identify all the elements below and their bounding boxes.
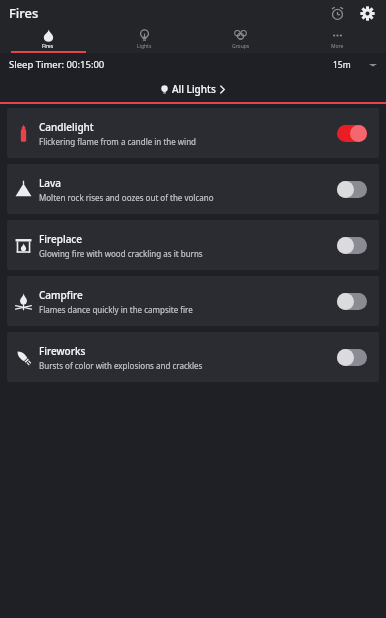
staticText: Molten rock rises and oozes out of the v… [39, 192, 214, 203]
button[interactable]: Fires [0, 26, 96, 53]
staticText: Groups [232, 43, 250, 50]
button[interactable]: Groups [192, 26, 289, 53]
staticText: Campfire [39, 288, 83, 302]
button[interactable]: All Lights [0, 76, 386, 102]
button[interactable]: Settings [354, 0, 380, 26]
button[interactable]: Toggle Fireworks [325, 332, 379, 382]
staticText: Lava [39, 176, 62, 190]
button[interactable]: Toggle Campfire [325, 276, 379, 326]
button[interactable]: Sleep timer [324, 0, 350, 26]
staticText: All Lights [172, 82, 216, 96]
button[interactable]: Toggle Fireplace [325, 220, 379, 270]
button[interactable]: Fireplace [7, 220, 379, 270]
staticText: Bursts of color with explosions and crac… [39, 360, 203, 371]
staticText: Sleep Timer: 00:15:00 [9, 58, 105, 71]
staticText: 15m [333, 59, 351, 71]
button[interactable]: Campfire [7, 276, 379, 326]
button[interactable]: More [289, 26, 386, 53]
staticText: Flames dance quickly in the campsite fir… [39, 304, 193, 315]
staticText: Candlelight [39, 120, 94, 134]
staticText: Fires [42, 43, 54, 50]
button[interactable]: Lava [7, 164, 379, 214]
staticText: Fires [9, 4, 39, 22]
staticText: More [331, 43, 344, 50]
button[interactable]: Candlelight [7, 108, 379, 158]
staticText: Lights [137, 43, 152, 50]
button[interactable]: Toggle Lava [325, 164, 379, 214]
button[interactable]: Fireworks [7, 332, 379, 382]
staticText: Glowing fire with wood crackling as it b… [39, 248, 203, 259]
staticText: Fireplace [39, 232, 83, 246]
button[interactable]: Lights [96, 26, 192, 53]
staticText: Fireworks [39, 344, 86, 358]
button[interactable]: Toggle Candlelight [325, 108, 379, 158]
staticText: Flickering flame from a candle in the wi… [39, 136, 197, 147]
button[interactable]: Sleep Timer: 00:15:00 [0, 53, 386, 76]
